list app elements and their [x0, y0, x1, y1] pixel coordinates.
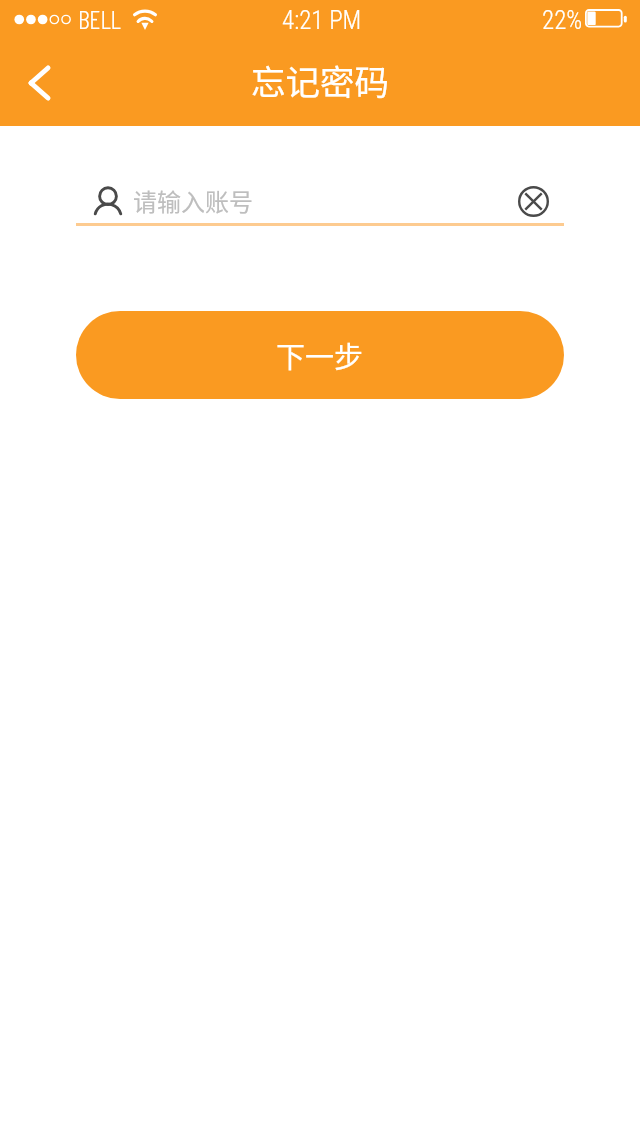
- staticText: 忘记密码: [251, 55, 389, 105]
- button[interactable]: Clear: [508, 176, 558, 226]
- staticText: 下一步: [276, 334, 364, 376]
- staticText: 4:21 PM: [282, 6, 362, 35]
- button[interactable]: Back: [4, 44, 76, 126]
- staticText: 请输入账号: [133, 183, 253, 218]
- staticText: BELL: [78, 3, 121, 34]
- button[interactable]: 请输入账号: [76, 172, 564, 223]
- button[interactable]: 下一步: [76, 311, 564, 399]
- staticText: 22%: [542, 6, 583, 35]
